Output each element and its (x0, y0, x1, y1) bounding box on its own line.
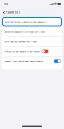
button[interactable]: Détection des appareils non connus (2, 47, 62, 56)
button[interactable]: Chiffrage des données hors ligne (2, 37, 62, 46)
staticText: Chiffrage des données hors ligne (4, 40, 36, 43)
staticText: Détection des appareils non connus (4, 50, 39, 53)
staticText: 9:41 (4, 2, 8, 6)
button[interactable]: Recherche d'appareils en mode hors ligne (2, 27, 62, 36)
button[interactable]: Paramètres (0, 10, 22, 15)
staticText: Paramètres (6, 11, 20, 14)
staticText: Autorisation de la détection des apparei… (4, 20, 46, 23)
staticText: Avancé : utilisation des infos locales (4, 60, 42, 63)
button[interactable]: Autorisation de la détection des apparei… (2, 17, 62, 26)
staticText: Recherche d'appareils en mode hors ligne (4, 30, 44, 33)
button[interactable]: Avancé : utilisation des infos locales (2, 56, 62, 66)
